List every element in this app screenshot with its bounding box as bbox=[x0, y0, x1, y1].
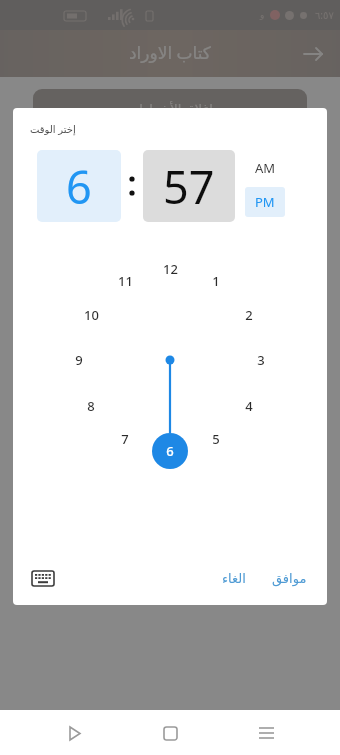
button[interactable]: 5 bbox=[203, 429, 229, 449]
staticText: كتاب الاوراد bbox=[129, 41, 211, 64]
staticText: الغاء bbox=[222, 571, 246, 586]
button[interactable]: Switch to text input bbox=[29, 564, 57, 592]
button[interactable]: 8 bbox=[78, 396, 104, 416]
button[interactable]: 6 bbox=[37, 150, 121, 222]
button[interactable]: إغلاق الأشعارات bbox=[33, 89, 307, 129]
button[interactable]: 57 bbox=[143, 150, 235, 222]
staticText: موافق bbox=[272, 571, 307, 586]
staticText: إغلاق الأشعارات bbox=[127, 100, 213, 118]
button[interactable]: 10 bbox=[78, 305, 104, 325]
staticText: 9 bbox=[75, 351, 83, 369]
button[interactable]: 7 bbox=[112, 429, 138, 449]
button[interactable]: Back bbox=[52, 711, 96, 755]
button[interactable]: 3 bbox=[248, 350, 274, 370]
button[interactable]: 9 bbox=[66, 350, 92, 370]
staticText: 6 bbox=[66, 156, 92, 217]
button[interactable]: PM bbox=[245, 187, 285, 217]
staticText: و bbox=[260, 10, 265, 20]
staticText: AM bbox=[255, 159, 276, 177]
staticText: 11 bbox=[118, 272, 133, 290]
staticText: 3 bbox=[257, 351, 265, 369]
button[interactable]: 12 bbox=[157, 259, 183, 279]
staticText: PM bbox=[255, 193, 275, 211]
button[interactable]: Recent apps bbox=[244, 711, 288, 755]
button[interactable]: 4 bbox=[236, 396, 262, 416]
staticText: إختر الوقت bbox=[30, 122, 76, 136]
staticText: 5 bbox=[212, 430, 220, 448]
staticText: 6 bbox=[166, 442, 174, 460]
staticText: 2 bbox=[245, 306, 253, 324]
button[interactable]: Back bbox=[296, 37, 330, 71]
button[interactable]: 1 bbox=[203, 271, 229, 291]
staticText: 7 bbox=[121, 430, 129, 448]
staticText: 8 bbox=[87, 397, 95, 415]
button[interactable]: 2 bbox=[236, 305, 262, 325]
button[interactable]: 6 bbox=[157, 441, 183, 461]
button[interactable]: AM bbox=[245, 155, 285, 181]
staticText: 4 bbox=[245, 397, 253, 415]
button[interactable]: Home bbox=[148, 711, 192, 755]
staticText: 1 bbox=[212, 272, 220, 290]
staticText: ٦:٥٧ bbox=[315, 8, 334, 22]
button[interactable]: الغاء bbox=[222, 571, 246, 586]
button[interactable]: 11 bbox=[112, 271, 138, 291]
button[interactable]: موافق bbox=[272, 571, 307, 586]
staticText: 57 bbox=[163, 156, 215, 217]
staticText: 10 bbox=[84, 306, 99, 324]
staticText: 12 bbox=[163, 260, 178, 278]
